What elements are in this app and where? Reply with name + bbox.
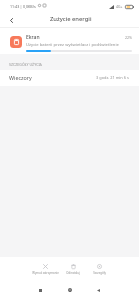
button[interactable]: Recent apps (31, 281, 49, 299)
staticText: 11:43 | 0,0KB/s (10, 4, 36, 9)
staticText: Odinstaluj (66, 271, 80, 275)
staticText: 22% (125, 35, 133, 40)
staticText: Wieczory (9, 74, 32, 81)
staticText: Wymuś zatrzymanie (32, 271, 59, 275)
staticText: 4G+ (116, 4, 123, 9)
staticText: 3 godz. 21 min 6 s (96, 75, 129, 80)
staticText: SZCZEGÓŁY UŻYCIA (9, 62, 42, 67)
staticText: Szczegóły (93, 271, 106, 275)
staticText: Zużycie energii (50, 15, 92, 23)
staticText: Ekran (26, 34, 40, 41)
button[interactable]: Wymuś zatrzymanie (29, 260, 61, 279)
button[interactable]: Szczegóły (83, 260, 115, 279)
button[interactable]: Odinstaluj (57, 260, 89, 279)
button[interactable]: Back (89, 281, 107, 299)
button[interactable]: Back (1, 13, 21, 27)
button[interactable]: Home (61, 281, 79, 299)
button[interactable]: Wieczory (0, 70, 139, 86)
staticText: Użycie baterii przez wyświetlacz i podśw… (26, 42, 119, 48)
button[interactable]: Ekran (0, 28, 139, 54)
